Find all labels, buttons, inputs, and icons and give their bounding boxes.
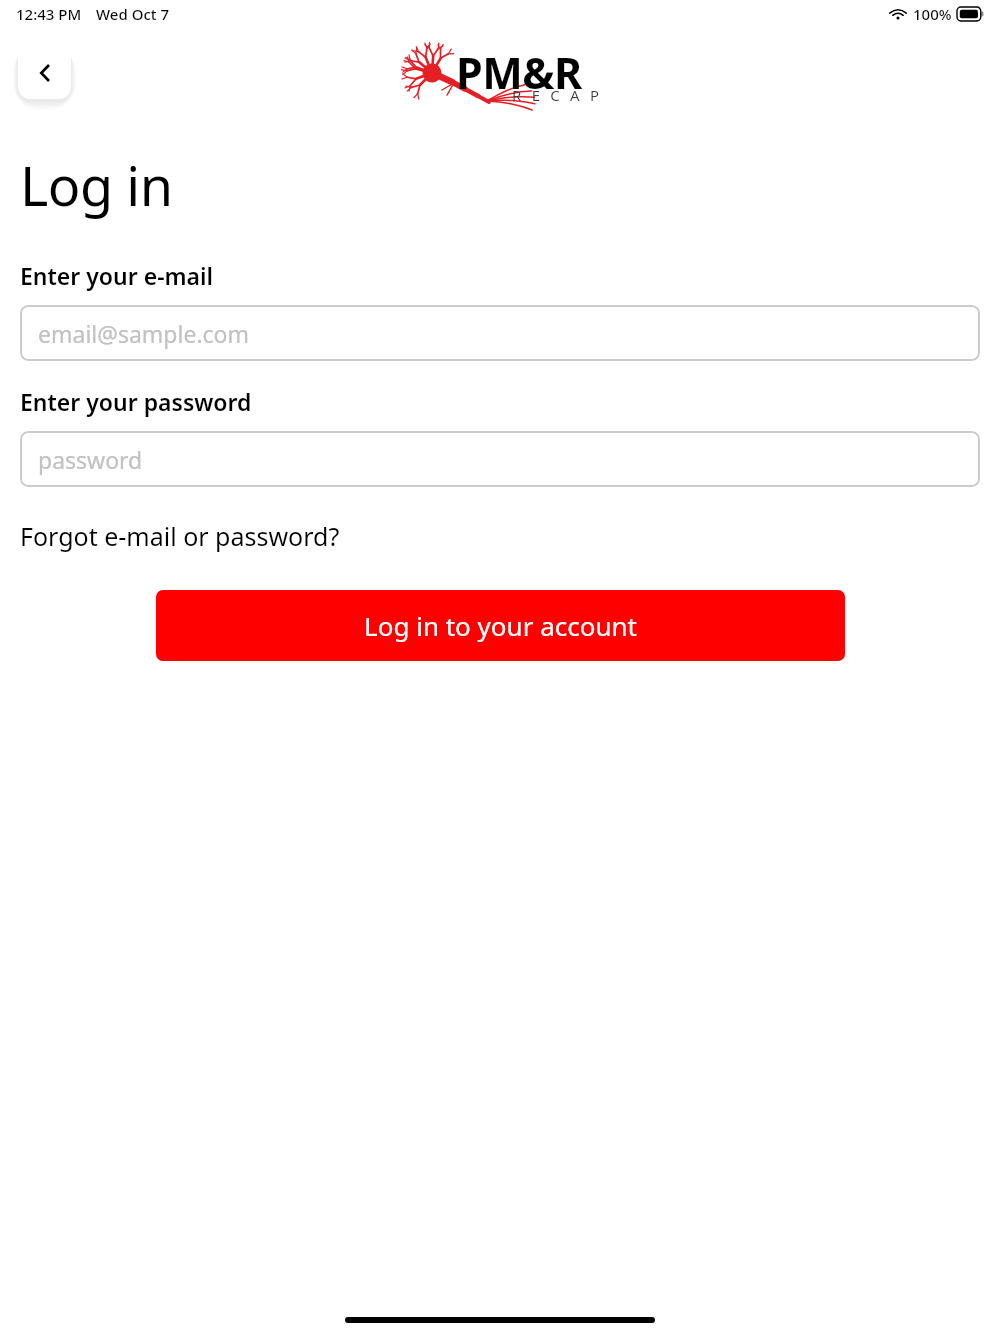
staticText: Log in — [20, 148, 173, 222]
staticText: password — [38, 444, 143, 475]
staticText: PM&R — [456, 43, 582, 102]
button[interactable]: password — [20, 431, 980, 487]
button[interactable]: Back — [18, 46, 71, 99]
staticText: Enter your password — [20, 386, 252, 417]
staticText: 100% — [913, 4, 952, 24]
staticText: Log in to your account — [364, 608, 637, 643]
staticText: Enter your e-mail — [20, 260, 214, 291]
staticText: Wed Oct 7 — [96, 4, 169, 24]
staticText: email@sample.com — [38, 318, 250, 349]
staticText: 12:43 PM — [16, 4, 82, 24]
staticText: Forgot e-mail or password? — [20, 519, 340, 553]
button[interactable]: email@sample.com — [20, 305, 980, 361]
staticText: R E C A P — [512, 85, 603, 105]
button[interactable]: Forgot e-mail or password? — [20, 519, 340, 553]
button[interactable]: Log in to your account — [156, 590, 845, 661]
